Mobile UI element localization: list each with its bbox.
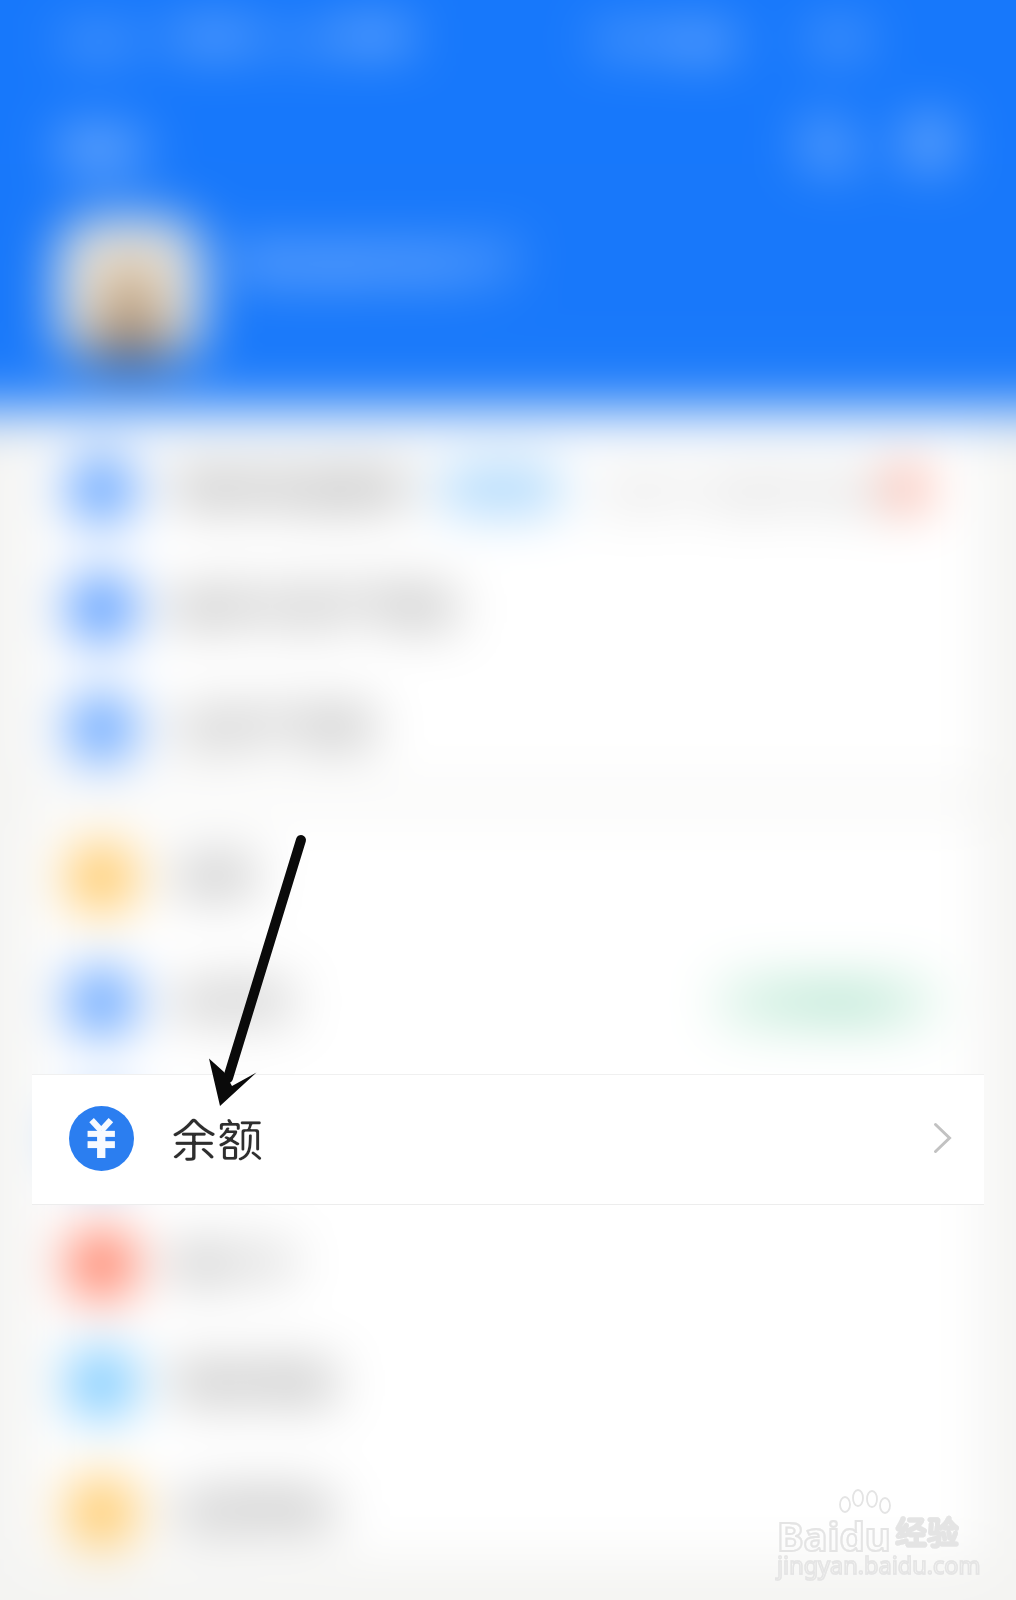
staticText: 我的客服 [174, 1357, 334, 1407]
button[interactable] [32, 1077, 984, 1199]
staticText: 余额 [171, 1112, 263, 1166]
button[interactable] [32, 1322, 984, 1444]
staticText: 余利宝 [174, 976, 294, 1026]
staticText: 余额 [174, 1112, 254, 1162]
staticText: 已有3个包裹等待签收 [597, 470, 894, 512]
button[interactable] [32, 941, 984, 1063]
staticText: Baidu [777, 1508, 891, 1562]
staticText: 待取件 [459, 472, 543, 507]
staticText: 设置帮助 [174, 1486, 334, 1536]
button[interactable] [32, 547, 984, 669]
button[interactable] [32, 1451, 984, 1573]
staticText: WLAN ▮▮ ▮ [596, 20, 734, 57]
staticText: 阳光灿烂的日子 [240, 238, 520, 288]
button[interactable]: Profile photo [58, 218, 202, 362]
button[interactable]: 余额 [32, 1074, 984, 1205]
staticText: 账单与资产明细 [174, 582, 454, 632]
button[interactable] [32, 428, 984, 550]
staticText: 我的 [58, 122, 146, 177]
staticText: jingyan.baidu.com [777, 1549, 981, 1581]
button[interactable]: Help [900, 114, 958, 172]
staticText: 经验 [895, 1513, 960, 1551]
staticText: 银行卡 [174, 1238, 294, 1288]
button[interactable] [32, 816, 984, 938]
button[interactable]: Search [796, 114, 854, 172]
staticText: 我的快递服务 [174, 463, 414, 513]
staticText: 花呗 [174, 851, 254, 901]
staticText: 中国移动 [162, 22, 267, 53]
button[interactable] [32, 667, 984, 789]
staticText: 总资产查看 [174, 702, 374, 752]
button[interactable] [32, 1203, 984, 1325]
